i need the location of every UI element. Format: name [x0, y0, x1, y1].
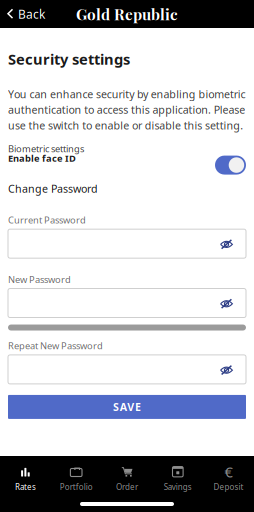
- button[interactable]: €: [203, 462, 254, 497]
- button[interactable]: Rates: [0, 462, 51, 497]
- staticText: Rates: [15, 481, 36, 492]
- staticText: Repeat New Password: [8, 339, 103, 352]
- staticText: €: [225, 462, 233, 481]
- staticText: Order: [116, 481, 138, 492]
- button[interactable]: SAVE: [8, 395, 246, 419]
- staticText: Portfolio: [60, 481, 93, 492]
- staticText: Gold Republic: [76, 4, 178, 24]
- staticText: Biometric settings: [8, 142, 84, 155]
- staticText: Deposit: [214, 481, 244, 492]
- button[interactable]: Savings: [152, 462, 203, 497]
- staticText: Back: [18, 6, 45, 22]
- staticText: Security settings: [8, 49, 130, 69]
- button[interactable]: Current Password: [8, 229, 246, 258]
- button[interactable]: Repeat New Password: [8, 355, 246, 384]
- button[interactable]: New Password: [8, 288, 246, 317]
- button[interactable]: Order: [102, 462, 152, 497]
- staticText: Current Password: [8, 214, 86, 226]
- staticText: New Password: [8, 273, 71, 285]
- staticText: Change Password: [8, 182, 98, 196]
- staticText: You can enhance security by enabling bio…: [8, 87, 246, 132]
- staticText: Savings: [164, 481, 192, 492]
- staticText: SAVE: [113, 400, 141, 414]
- button[interactable]: Enable face ID: [215, 146, 246, 165]
- button[interactable]: Back: [0, 0, 55, 29]
- staticText: Enable face ID: [8, 152, 76, 165]
- button[interactable]: Portfolio: [51, 462, 102, 497]
